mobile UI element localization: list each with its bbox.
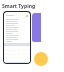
staticText: Smart Typing <box>2 3 36 10</box>
